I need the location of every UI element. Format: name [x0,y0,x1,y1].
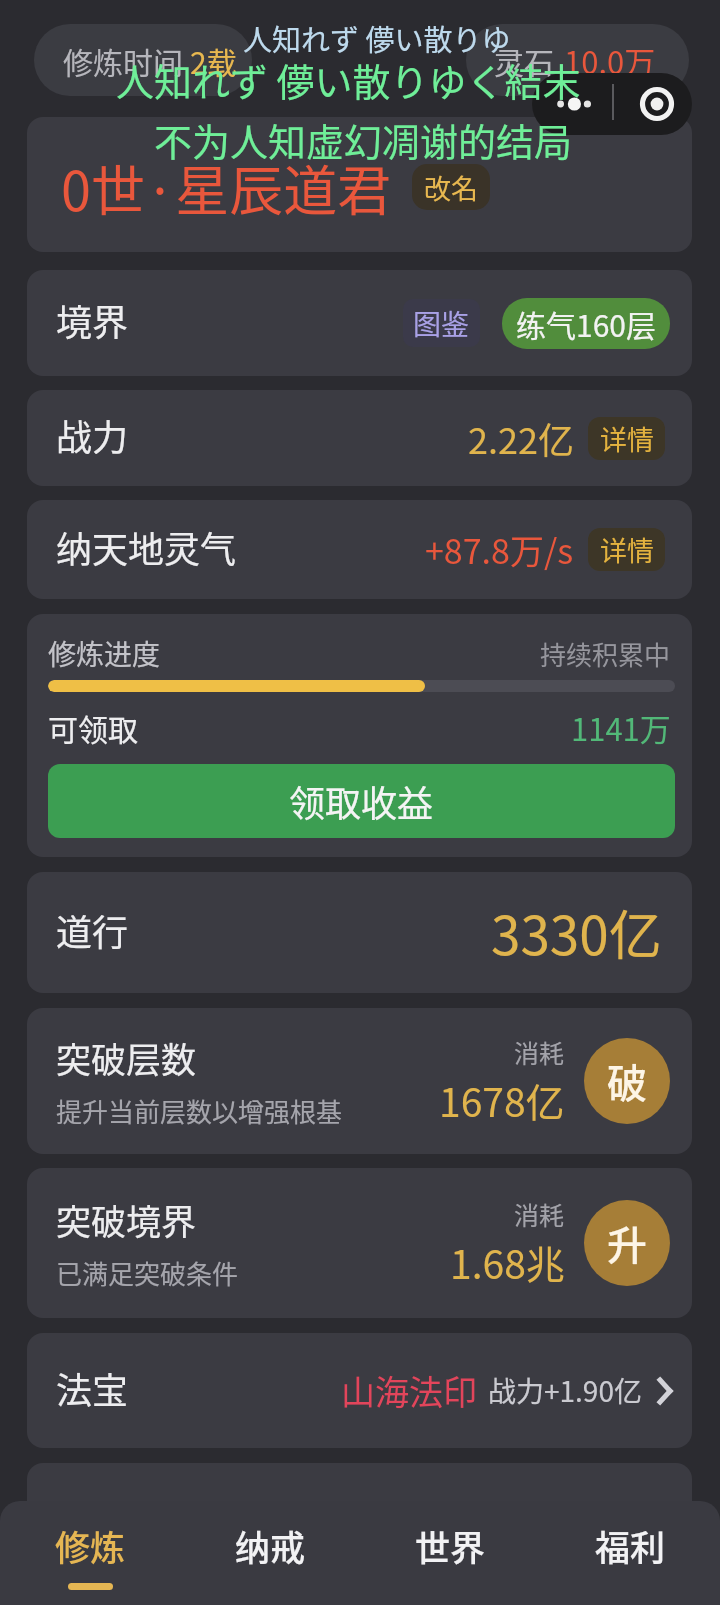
button[interactable]: 改名 [412,164,490,210]
staticText: 领取收益 [289,775,434,827]
button[interactable]: 领取收益 [48,764,675,838]
staticText: +87.8万/s [425,525,574,574]
button[interactable]: 境界 [27,270,692,376]
staticText: 3330亿 [491,894,662,971]
button[interactable]: 战力 [27,390,692,486]
staticText: 升 [607,1214,647,1272]
button[interactable]: 修炼进度 [27,614,692,857]
staticText: 1678亿 [439,1072,565,1128]
staticText: 提升当前层数以增强根基 [56,1092,343,1130]
button[interactable]: 突破层数 [27,1008,692,1154]
staticText: 灵石 [494,39,554,82]
staticText: 2载 [190,39,237,82]
staticText: 福利 [595,1520,666,1571]
staticText: 图鉴 [413,303,470,344]
staticText: 山海法印 [341,1366,477,1415]
staticText: 10.0万 [564,38,656,83]
staticText: 突破境界 [56,1194,197,1245]
staticText: 可领取 [48,706,138,749]
staticText: 战力+1.90亿 [488,1370,642,1411]
button[interactable]: 修炼时间 [34,24,252,96]
button[interactable]: 道行 [27,872,692,993]
staticText: 详情 [600,530,654,569]
other: 查看法宝 [658,1378,672,1404]
staticText: 已满足突破条件 [56,1254,239,1292]
staticText: 练气160层 [516,302,656,345]
button[interactable]: 图鉴 [403,299,480,347]
button[interactable]: 纳戒 [180,1501,360,1605]
staticText: 消耗 [514,1196,565,1232]
staticText: 改名 [424,168,478,207]
staticText: 人知れず 儚い散りゆ [243,17,511,59]
staticText: 法宝 [56,1362,129,1414]
button[interactable]: 世界 [360,1501,540,1605]
button[interactable]: 更多 [532,73,612,135]
staticText: 修炼 [55,1520,126,1571]
staticText: 境界 [56,294,129,346]
button[interactable]: 升 [584,1200,670,1286]
button[interactable]: 详情 [588,417,665,460]
staticText: 道行 [56,904,129,956]
button[interactable]: 练气160层 [502,298,670,349]
staticText: 突破层数 [56,1032,197,1083]
staticText: 消耗 [514,1034,565,1070]
staticText: 1.68兆 [450,1234,565,1290]
staticText: 0世·星辰道君 [61,148,392,226]
staticText: 战力 [56,409,129,461]
staticText: 2.22亿 [468,412,574,464]
staticText: 人知れず 儚い散りゆく結末 [116,52,581,107]
staticText: 破 [607,1052,647,1110]
staticText: 详情 [600,419,654,458]
staticText: 纳戒 [235,1520,306,1571]
staticText: 世界 [415,1520,486,1571]
staticText: 纳天地灵气 [56,521,237,573]
staticText: 1141万 [571,705,671,750]
staticText: 修炼时间 [63,39,183,82]
button[interactable]: 修炼 [0,1501,180,1605]
button[interactable]: 破 [584,1038,670,1124]
staticText: 持续积累中 [540,635,671,673]
staticText: 修炼进度 [48,633,161,674]
button[interactable]: 法宝 [27,1333,692,1448]
button[interactable]: 突破境界 [27,1168,692,1318]
button[interactable]: 灵石 [466,24,689,96]
button[interactable]: 0世·星辰道君 [27,117,692,252]
button[interactable]: 详情 [588,528,665,571]
button[interactable]: 关闭 [614,73,692,135]
staticText: 不为人知虚幻凋谢的结局 [154,112,573,167]
button[interactable]: 纳天地灵气 [27,500,692,599]
button[interactable]: 福利 [540,1501,720,1605]
